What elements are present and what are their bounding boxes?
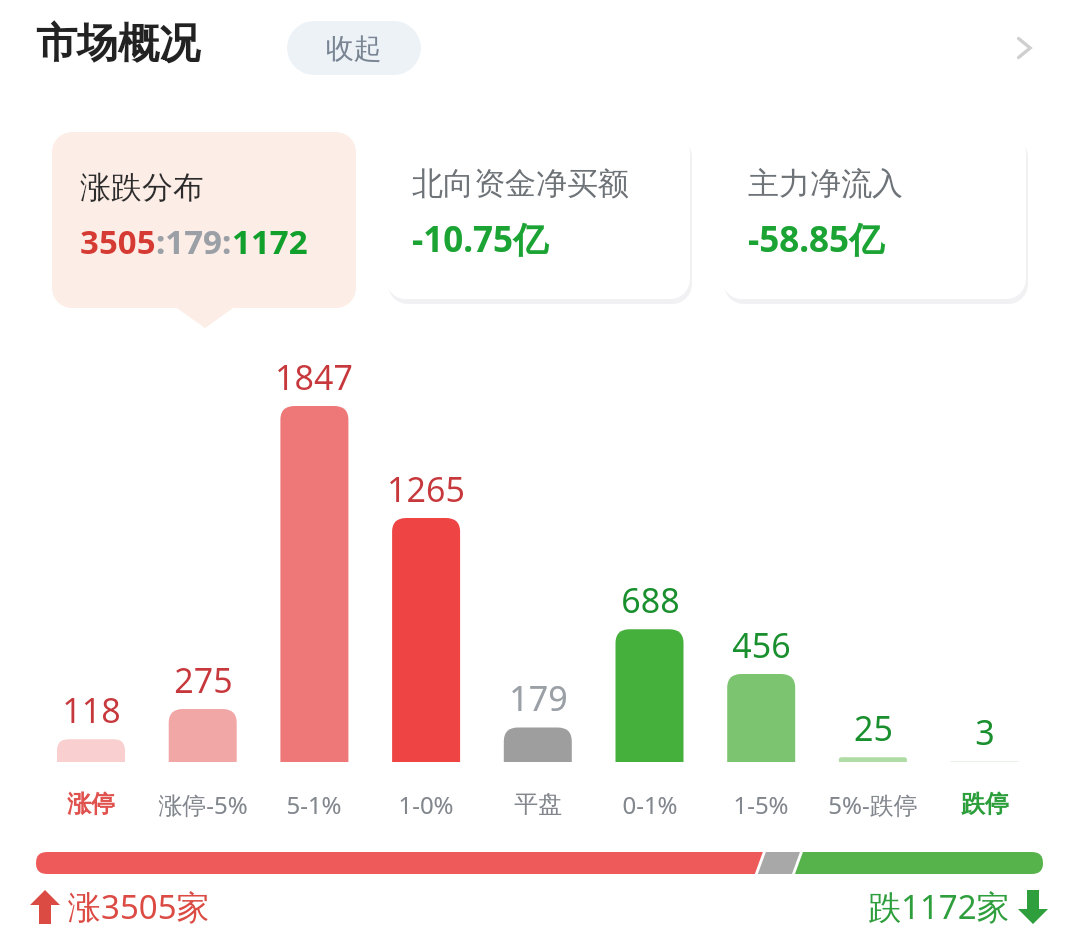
staticText: 涨跌分布 xyxy=(80,168,204,207)
staticText: 3 xyxy=(975,709,995,755)
staticText: 688 xyxy=(621,577,680,623)
button[interactable]: 涨跌分布 xyxy=(52,132,356,308)
staticText: 5-1% xyxy=(286,788,342,821)
staticText: 3505 xyxy=(80,219,156,264)
staticText: 市场概况 xyxy=(36,18,200,70)
button[interactable]: 收起 xyxy=(287,21,421,75)
staticText: 北向资金净买额 xyxy=(412,164,629,203)
staticText: 跌停 xyxy=(961,789,1009,819)
staticText: 涨停-5% xyxy=(158,788,248,821)
staticText: 平盘 xyxy=(514,789,562,819)
staticText: 涨3505家 xyxy=(68,884,210,929)
staticText: 主力净流入 xyxy=(748,164,903,203)
staticText: 1265 xyxy=(387,466,465,512)
button[interactable]: 涨3505家 xyxy=(30,884,210,929)
button[interactable]: 主力净流入 xyxy=(722,132,1026,299)
staticText: 456 xyxy=(732,622,791,668)
staticText: 涨停 xyxy=(67,789,115,819)
staticText: 1847 xyxy=(275,354,353,400)
staticText: -58.85亿 xyxy=(748,215,885,263)
staticText: 跌1172家 xyxy=(868,884,1010,929)
button[interactable]: More xyxy=(1000,24,1048,72)
staticText: 275 xyxy=(174,657,233,703)
button[interactable]: 北向资金净买额 xyxy=(386,132,690,299)
staticText: :179: xyxy=(156,219,232,264)
staticText: 收起 xyxy=(326,31,382,66)
staticText: 179 xyxy=(509,675,568,721)
staticText: -10.75亿 xyxy=(412,215,549,263)
staticText: 1-5% xyxy=(733,788,789,821)
staticText: 5%-跌停 xyxy=(828,788,918,821)
staticText: 118 xyxy=(62,687,121,733)
staticText: 0-1% xyxy=(622,788,678,821)
button[interactable]: 跌1172家 xyxy=(868,884,1048,929)
staticText: 25 xyxy=(854,705,893,751)
staticText: 1-0% xyxy=(398,788,454,821)
staticText: 1172 xyxy=(232,219,308,264)
